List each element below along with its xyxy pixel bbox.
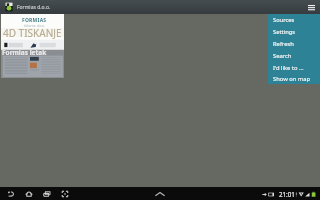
staticText: tiskarna d.o.o. bbox=[24, 24, 45, 28]
button[interactable]: Home bbox=[22, 187, 35, 200]
button[interactable]: Recents bbox=[40, 187, 53, 200]
staticText: Settings bbox=[273, 28, 296, 36]
button[interactable]: Screenshot bbox=[58, 187, 71, 200]
button[interactable]: Back bbox=[4, 187, 17, 200]
staticText: 4D TISKANJE bbox=[3, 26, 62, 40]
staticText: Refresh bbox=[273, 40, 294, 48]
button[interactable]: Show on map bbox=[268, 74, 320, 84]
staticText: Sources bbox=[273, 16, 295, 24]
staticText: Formias d.o.o. bbox=[17, 4, 51, 11]
button[interactable]: App icon bbox=[5, 2, 13, 12]
button[interactable]: FORMIAS bbox=[1, 14, 64, 78]
button[interactable]: Show notifications bbox=[152, 187, 168, 200]
staticText: Show on map bbox=[273, 75, 311, 83]
staticText: I'd like to ... bbox=[273, 64, 304, 72]
staticText: FORMIAS bbox=[22, 17, 47, 24]
staticText: Formias letak bbox=[2, 48, 47, 57]
button[interactable]: Settings bbox=[268, 26, 320, 38]
staticText: 21:01 bbox=[279, 190, 295, 198]
staticText: Search bbox=[273, 52, 292, 60]
button[interactable]: More options bbox=[305, 1, 317, 13]
button[interactable]: Search bbox=[268, 50, 320, 62]
button[interactable]: Sources bbox=[268, 14, 320, 26]
button[interactable]: Refresh bbox=[268, 38, 320, 50]
button[interactable]: I'd like to ... bbox=[268, 62, 320, 74]
